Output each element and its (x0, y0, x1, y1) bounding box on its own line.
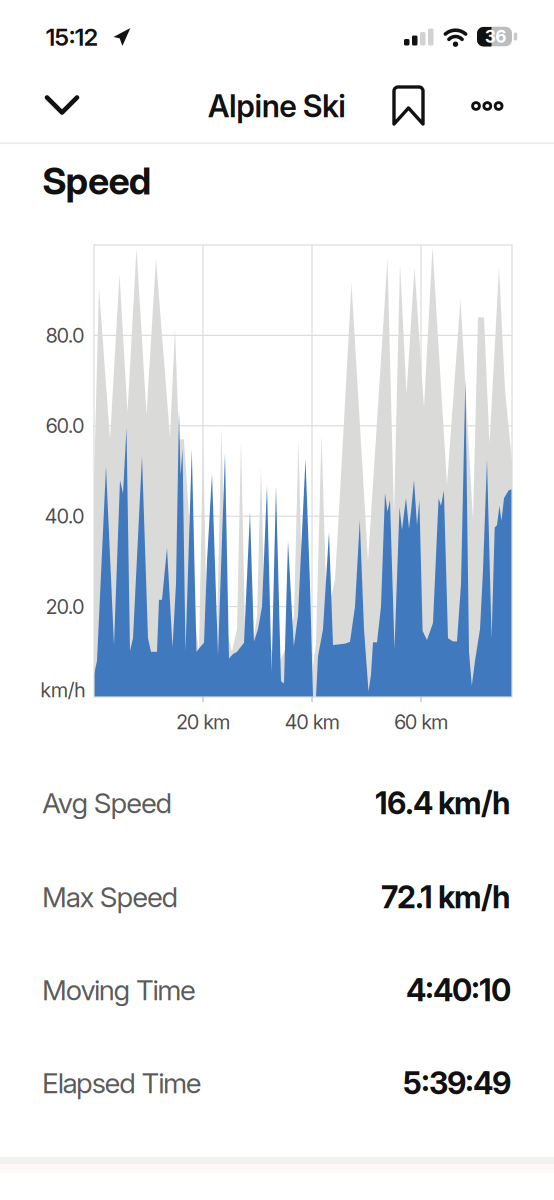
staticText: 40 km (284, 710, 340, 734)
staticText: Elapsed Time (42, 1066, 202, 1099)
staticText: 20.0 (45, 595, 85, 618)
staticText: 20 km (176, 710, 230, 734)
staticText: 60.0 (45, 414, 85, 438)
staticText: Moving Time (42, 973, 196, 1006)
staticText: 72.1 km/h (381, 879, 511, 915)
staticText: 60 km (394, 710, 448, 734)
staticText: 15:12 (45, 23, 98, 51)
staticText: Speed (42, 159, 152, 203)
staticText: km/h (40, 678, 86, 702)
staticText: Alpine Ski (208, 88, 346, 124)
button[interactable]: More options (465, 84, 509, 128)
staticText: Max Speed (42, 880, 179, 913)
staticText: 40.0 (44, 504, 85, 528)
staticText: Avg Speed (42, 786, 173, 819)
staticText: 5:39:49 (403, 1065, 511, 1101)
staticText: 36 (485, 26, 506, 47)
button[interactable]: Close (40, 84, 84, 128)
button[interactable]: Save (390, 82, 427, 128)
staticText: 16.4 km/h (375, 785, 511, 821)
staticText: 80.0 (45, 324, 85, 347)
staticText: 4:40:10 (406, 972, 511, 1008)
